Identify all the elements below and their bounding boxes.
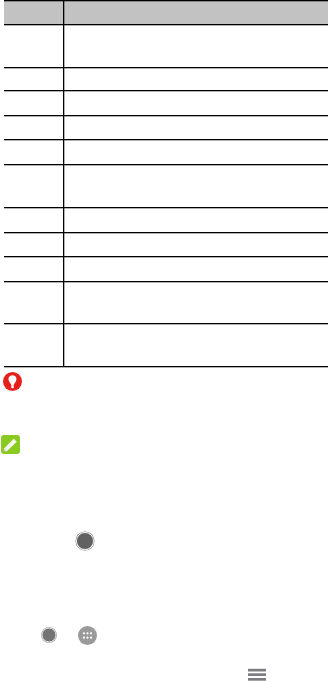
button[interactable]: Menu (248, 667, 266, 681)
button[interactable]: Recents (40, 626, 58, 644)
button[interactable]: Apps (78, 626, 97, 645)
button[interactable]: Edit (1, 435, 20, 454)
button[interactable]: Home (75, 531, 95, 551)
button[interactable]: Tip (3, 372, 22, 391)
